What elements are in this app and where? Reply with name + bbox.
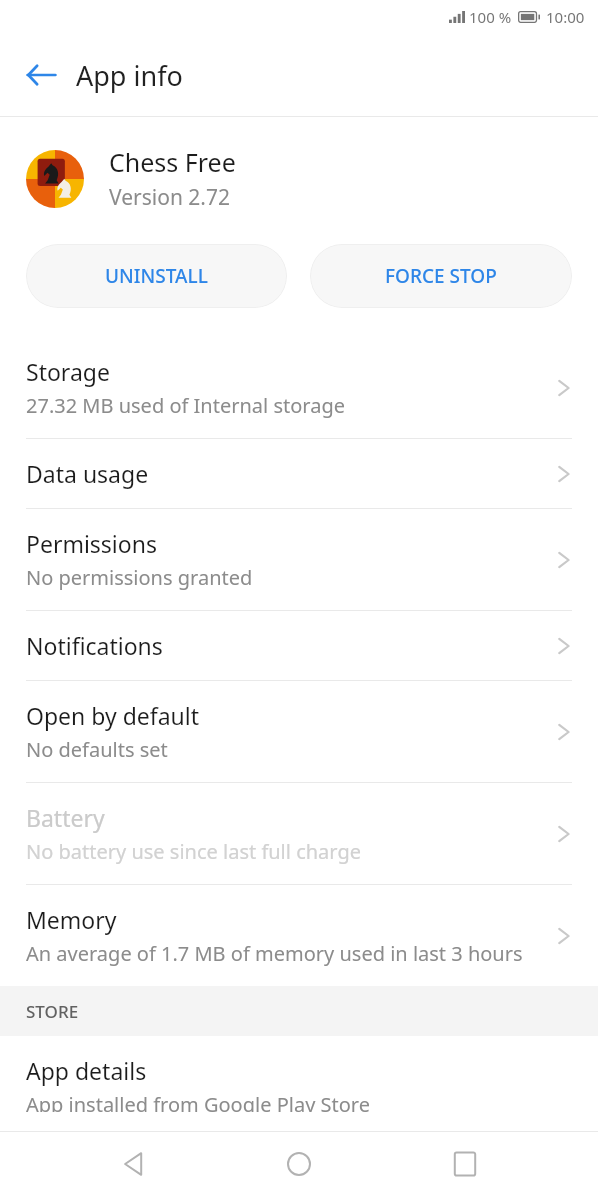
button[interactable]: App details <box>0 1036 598 1131</box>
staticText: Battery <box>26 802 105 833</box>
staticText: No defaults set <box>26 736 168 763</box>
button[interactable]: Recents <box>433 1132 497 1196</box>
staticText: 27.32 MB used of Internal storage <box>26 392 345 419</box>
button[interactable]: Open by default <box>0 681 598 782</box>
staticText: UNINSTALL <box>105 263 208 289</box>
button[interactable]: FORCE STOP <box>310 244 572 308</box>
staticText: No battery use since last full charge <box>26 838 361 865</box>
staticText: FORCE STOP <box>385 263 497 289</box>
staticText: STORE <box>26 1000 79 1023</box>
staticText: Notifications <box>26 630 163 661</box>
staticText: Open by default <box>26 700 200 731</box>
staticText: Chess Free <box>109 145 236 179</box>
button[interactable]: Back <box>16 50 66 100</box>
staticText: An average of 1.7 MB of memory used in l… <box>26 940 523 967</box>
staticText: App installed from Google Play Store <box>26 1091 370 1112</box>
button[interactable]: Home <box>267 1132 331 1196</box>
button[interactable]: Memory <box>0 885 598 986</box>
staticText: Data usage <box>26 458 149 489</box>
button[interactable]: Data usage <box>0 439 598 508</box>
button[interactable]: Notifications <box>0 611 598 680</box>
staticText: No permissions granted <box>26 564 253 591</box>
staticText: 10:00 <box>546 7 585 27</box>
button[interactable]: Permissions <box>0 509 598 610</box>
staticText: App details <box>26 1055 147 1086</box>
staticText: App info <box>76 57 183 94</box>
staticText: Version 2.72 <box>109 183 230 212</box>
staticText: Storage <box>26 356 110 387</box>
button[interactable]: Back <box>102 1132 166 1196</box>
button[interactable]: Storage <box>0 337 598 438</box>
staticText: 100 % <box>469 7 512 27</box>
staticText: Memory <box>26 904 117 935</box>
staticText: Permissions <box>26 528 157 559</box>
button[interactable]: Battery <box>0 783 598 884</box>
button[interactable]: UNINSTALL <box>26 244 287 308</box>
